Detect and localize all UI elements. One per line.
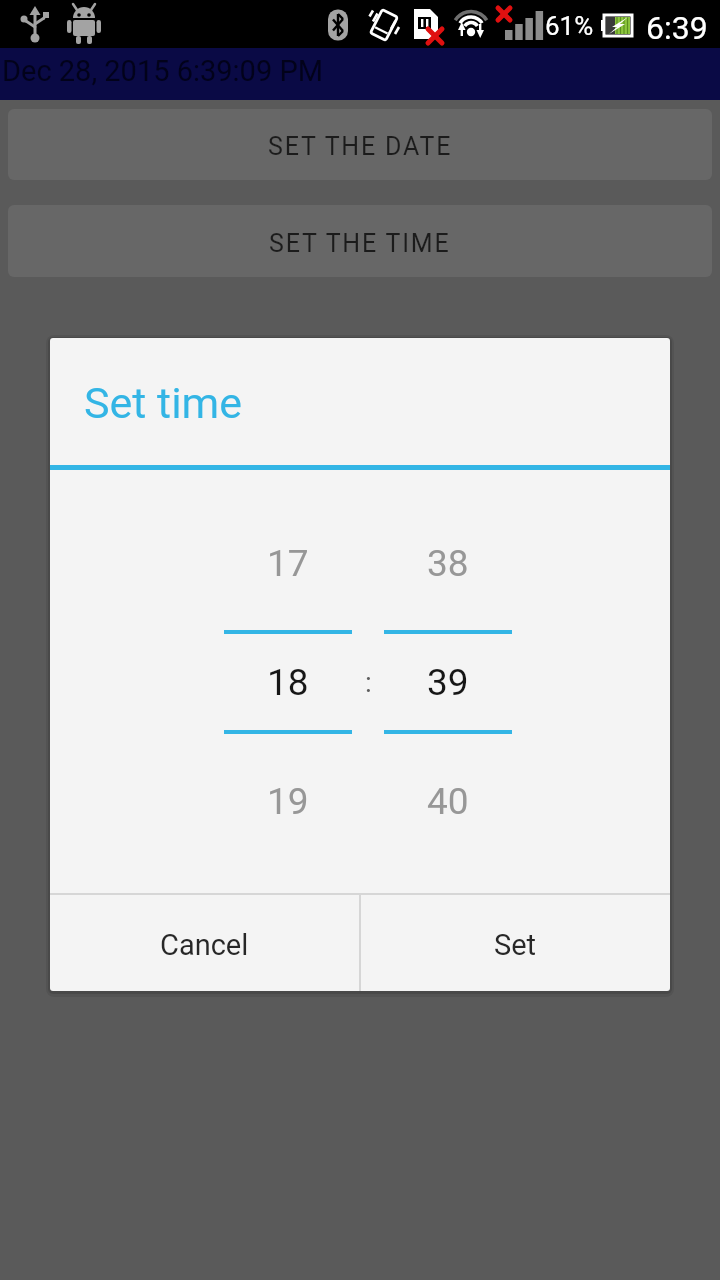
staticText: 38 xyxy=(427,542,469,585)
staticText: Set time xyxy=(84,378,243,428)
staticText: Dec 28, 2015 6:39:09 PM xyxy=(2,54,324,88)
staticText: 39 xyxy=(427,661,469,704)
button[interactable]: SET THE DATE xyxy=(8,109,712,180)
staticText: SET THE DATE xyxy=(268,132,453,161)
staticText: Set xyxy=(494,928,537,962)
staticText: SET THE TIME xyxy=(269,229,451,258)
button[interactable]: Cancel xyxy=(50,899,359,991)
staticText: 6:39 xyxy=(646,9,708,47)
staticText: 61% xyxy=(545,11,594,41)
staticText: 40 xyxy=(427,780,469,823)
staticText: 19 xyxy=(267,780,309,823)
staticText: Cancel xyxy=(160,928,249,962)
button[interactable]: Set xyxy=(361,899,670,991)
button[interactable]: SET THE TIME xyxy=(8,205,712,277)
button[interactable]: 39 xyxy=(384,647,512,717)
staticText: 18 xyxy=(267,661,309,704)
staticText: 17 xyxy=(267,542,309,585)
staticText: : xyxy=(365,666,372,699)
button[interactable]: 18 xyxy=(224,647,352,717)
